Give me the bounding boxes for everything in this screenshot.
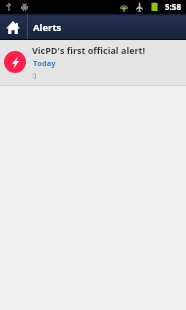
staticText: Today bbox=[33, 58, 56, 68]
button[interactable]: Home bbox=[0, 14, 27, 39]
staticText: 5:58 bbox=[165, 1, 182, 12]
staticText: :) bbox=[32, 69, 37, 80]
staticText: VicPD's first official alert! bbox=[32, 44, 146, 56]
staticText: Alerts bbox=[33, 21, 62, 34]
button[interactable]: VicPD's first official alert! bbox=[0, 40, 186, 85]
